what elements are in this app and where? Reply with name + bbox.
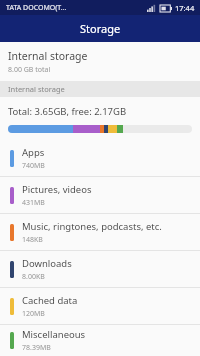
staticText: Downloads (22, 257, 72, 270)
staticText: 431MB (22, 198, 45, 208)
button[interactable]: Cached data (0, 288, 200, 324)
staticText: 740MB (22, 161, 45, 171)
staticText: Pictures, videos (22, 183, 92, 196)
staticText: Music, ringtones, podcasts, etc. (22, 220, 162, 233)
staticText: Cached data (22, 294, 78, 307)
staticText: TATA DOCOMO(T... (6, 3, 67, 13)
button[interactable]: Downloads (0, 251, 200, 287)
staticText: 120MB (22, 309, 45, 319)
staticText: Internal storage (8, 49, 88, 63)
other: Signal strength (147, 4, 156, 12)
staticText: 8.00KB (22, 272, 45, 282)
button[interactable]: Miscellaneous (0, 325, 200, 356)
button[interactable]: Internal storage (0, 42, 200, 81)
staticText: Storage (80, 21, 121, 36)
staticText: 78.39MB (22, 343, 51, 353)
staticText: 8.00 GB total (8, 65, 51, 75)
staticText: Internal storage (8, 84, 65, 94)
staticText: 17:44 (175, 3, 195, 13)
button[interactable]: Total: 3.65GB, free: 2.17GB (0, 97, 200, 140)
staticText: Apps (22, 146, 45, 159)
button[interactable]: Music, ringtones, podcasts, etc. (0, 214, 200, 250)
staticText: Total: 3.65GB, free: 2.17GB (8, 105, 127, 118)
other: Battery (160, 5, 172, 12)
button[interactable]: Pictures, videos (0, 177, 200, 213)
button[interactable]: Apps (0, 140, 200, 176)
staticText: 148KB (22, 235, 43, 245)
staticText: Miscellaneous (22, 328, 86, 341)
